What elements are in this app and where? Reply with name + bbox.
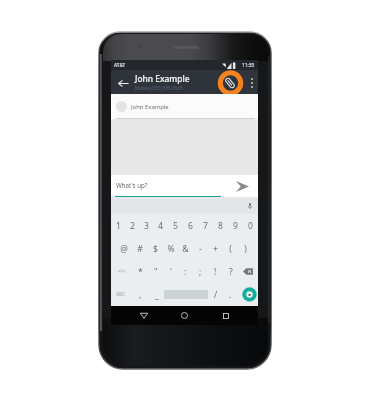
button[interactable]: Navigate up [111, 70, 135, 94]
button[interactable]: _ [150, 283, 163, 306]
button[interactable]: 3 [139, 214, 153, 237]
button[interactable]: ) [238, 237, 253, 260]
button[interactable]: , [131, 283, 150, 306]
staticText: ' [170, 266, 172, 278]
button[interactable]: John Example [111, 94, 258, 119]
staticText: ; [199, 266, 202, 278]
staticText: _ [155, 289, 159, 301]
staticText: / [214, 289, 218, 301]
staticText: 9 [233, 220, 238, 232]
button[interactable]: ABC [111, 283, 131, 306]
button[interactable]: Back [123, 306, 164, 325]
button[interactable]: 4 [153, 214, 168, 237]
button[interactable]: @ [116, 237, 132, 260]
staticText: , [139, 289, 142, 301]
button[interactable]: 8 [213, 214, 228, 237]
button[interactable]: . [223, 283, 237, 306]
button[interactable]: Home [164, 306, 205, 325]
staticText: * [138, 266, 143, 278]
staticText: 6 [188, 220, 193, 232]
button[interactable]: & [178, 237, 193, 260]
staticText: Mobile (555) 555-5555 [135, 85, 183, 91]
staticText: % [167, 243, 175, 255]
button[interactable]: ? [223, 260, 238, 283]
button[interactable]: Recent apps [205, 306, 246, 325]
staticText: ! [214, 266, 217, 278]
staticText: AT&T [114, 62, 126, 68]
staticText: ( [229, 243, 232, 255]
button[interactable]: Voice input [243, 199, 256, 212]
staticText: What's up? [116, 181, 148, 189]
button[interactable]: " [148, 260, 163, 283]
button[interactable]: Backspace [238, 260, 258, 283]
staticText: 11:35 [242, 62, 255, 69]
button[interactable]: 0 [243, 214, 258, 237]
staticText: $ [153, 243, 158, 255]
staticText: 1 [116, 220, 121, 232]
button[interactable]: =\< [111, 260, 133, 283]
button[interactable]: 2 [125, 214, 139, 237]
staticText: 3 [144, 220, 149, 232]
button[interactable]: ! [208, 260, 223, 283]
button[interactable]: Send message [234, 178, 250, 194]
button[interactable]: - [193, 237, 208, 260]
button[interactable]: $ [148, 237, 163, 260]
staticText: 7 [203, 220, 208, 232]
staticText: # [137, 243, 143, 255]
button[interactable]: Attach file [215, 70, 245, 94]
button[interactable]: 9 [228, 214, 243, 237]
button[interactable]: ; [193, 260, 208, 283]
staticText: 8 [218, 220, 223, 232]
staticText: =\< [118, 268, 126, 275]
staticText: ) [244, 243, 247, 255]
staticText: @ [120, 243, 128, 255]
button[interactable]: * [133, 260, 148, 283]
staticText: ABC [116, 291, 126, 298]
staticText: . [229, 289, 232, 301]
button[interactable]: 7 [198, 214, 213, 237]
button[interactable]: + [208, 237, 223, 260]
button[interactable]: # [132, 237, 148, 260]
staticText: 4 [158, 220, 163, 232]
staticText: 2 [130, 220, 135, 232]
button[interactable]: 1 [111, 214, 125, 237]
staticText: - [199, 243, 202, 255]
staticText: John Example [131, 103, 169, 111]
button[interactable]: 5 [168, 214, 183, 237]
staticText: " [154, 266, 158, 278]
button[interactable]: ' [163, 260, 178, 283]
staticText: 0 [248, 220, 253, 232]
staticText: 5 [173, 220, 178, 232]
staticText: ? [229, 266, 233, 278]
button[interactable]: % [163, 237, 178, 260]
staticText: John Example [135, 73, 190, 84]
button[interactable]: / [209, 283, 223, 306]
staticText: & [182, 243, 189, 255]
button[interactable]: : [178, 260, 193, 283]
staticText: : [184, 266, 187, 278]
button[interactable]: ( [223, 237, 238, 260]
button[interactable]: More options [245, 70, 258, 94]
button[interactable]: Emoji [237, 283, 258, 306]
staticText: + [213, 243, 218, 255]
button[interactable]: 6 [183, 214, 198, 237]
